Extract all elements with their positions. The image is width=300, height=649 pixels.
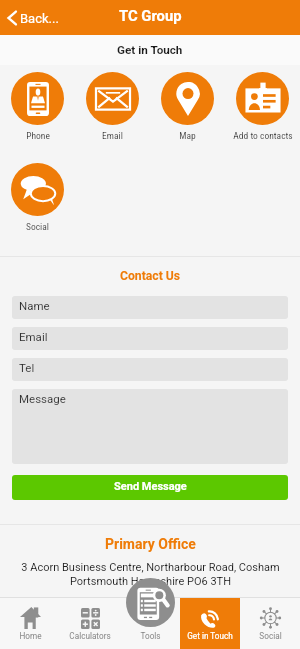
button[interactable]: Get in Touch — [180, 598, 240, 649]
staticText: Get in Touch — [187, 631, 233, 641]
button[interactable]: Back... — [5, 10, 59, 26]
staticText: Map — [179, 130, 196, 141]
staticText: Social — [26, 221, 49, 232]
button[interactable]: Add to contacts — [225, 72, 300, 141]
staticText: Primary Office — [105, 536, 196, 552]
button[interactable]: Calculators — [60, 598, 120, 649]
staticText: Email — [19, 330, 48, 343]
button[interactable]: Tel — [12, 358, 288, 381]
button[interactable]: Email — [12, 327, 288, 350]
staticText: Tools — [140, 631, 161, 641]
button[interactable]: Send Message — [12, 475, 288, 500]
staticText: Home — [19, 631, 42, 641]
staticText: Message — [19, 392, 66, 405]
button[interactable]: Email — [75, 72, 150, 141]
staticText: Phone — [26, 130, 50, 141]
staticText: Get in Touch — [117, 43, 183, 57]
button[interactable]: Home — [0, 598, 60, 649]
button[interactable]: Tools — [120, 598, 180, 649]
staticText: TC Group — [119, 7, 182, 24]
staticText: Tel — [19, 361, 35, 374]
staticText: Contact Us — [120, 269, 181, 283]
staticText: Send Message — [114, 480, 187, 493]
staticText: Email — [102, 130, 123, 141]
staticText: Calculators — [69, 631, 111, 641]
button[interactable]: Map — [150, 72, 225, 141]
staticText: Social — [259, 631, 282, 641]
button[interactable]: Tools — [126, 578, 175, 627]
button[interactable]: Message — [12, 389, 288, 464]
staticText: Back... — [20, 11, 59, 26]
staticText: Name — [19, 299, 50, 312]
button[interactable]: Social — [0, 163, 75, 232]
button[interactable]: Phone — [0, 72, 75, 141]
button[interactable]: Social — [240, 598, 300, 649]
staticText: Add to contacts — [233, 130, 293, 141]
staticText: 3 Acorn Business Centre, Northarbour Roa… — [21, 561, 280, 588]
button[interactable]: Name — [12, 296, 288, 319]
